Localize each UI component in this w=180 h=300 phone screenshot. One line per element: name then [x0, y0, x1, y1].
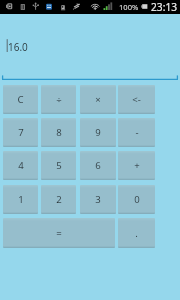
staticText: 3: [95, 193, 101, 206]
button[interactable]: 9: [80, 118, 116, 147]
staticText: .: [135, 227, 138, 240]
staticText: -: [135, 126, 139, 139]
button[interactable]: 4: [3, 151, 38, 180]
button[interactable]: .: [118, 218, 155, 248]
button[interactable]: 8: [41, 118, 76, 147]
button[interactable]: +: [118, 151, 155, 180]
staticText: 6: [95, 159, 101, 172]
button[interactable]: 6: [80, 151, 116, 180]
button[interactable]: 5: [41, 151, 76, 180]
staticText: 16.0: [8, 40, 28, 54]
staticText: 100%: [119, 2, 139, 12]
staticText: +: [134, 159, 140, 172]
staticText: 7: [18, 126, 24, 139]
staticText: ×: [95, 93, 101, 106]
button[interactable]: -: [118, 118, 155, 147]
staticText: 23:13: [151, 0, 178, 14]
staticText: 9: [95, 126, 101, 139]
staticText: 2: [56, 193, 62, 206]
button[interactable]: <-: [118, 85, 155, 114]
button[interactable]: C: [3, 85, 38, 114]
button[interactable]: 0: [118, 185, 155, 214]
staticText: 0: [134, 193, 140, 206]
button[interactable]: ÷: [41, 85, 76, 114]
staticText: 8: [56, 126, 62, 139]
staticText: 5: [56, 159, 62, 172]
button[interactable]: ×: [80, 85, 116, 114]
staticText: <-: [132, 93, 141, 106]
staticText: 4: [18, 159, 24, 172]
button[interactable]: =: [3, 218, 115, 248]
staticText: ÷: [56, 93, 62, 106]
button[interactable]: 1: [3, 185, 38, 214]
button[interactable]: 3: [80, 185, 116, 214]
staticText: 1: [18, 193, 24, 206]
staticText: C: [17, 93, 24, 106]
button[interactable]: 2: [41, 185, 76, 214]
staticText: =: [56, 227, 62, 240]
button[interactable]: 7: [3, 118, 38, 147]
